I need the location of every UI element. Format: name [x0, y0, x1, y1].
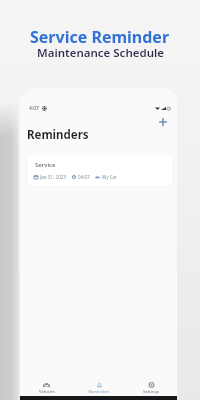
staticText: Reminders: [88, 389, 110, 395]
staticText: Settings: [143, 389, 159, 395]
staticText: My Car: [102, 174, 118, 180]
staticText: Service: [35, 161, 56, 169]
staticText: Jan 31, 2023: [40, 174, 67, 180]
button[interactable]: Vehicles: [20, 382, 73, 395]
button[interactable]: Reminders: [73, 382, 125, 395]
staticText: 04:07: [78, 174, 90, 180]
button[interactable]: Settings: [125, 382, 177, 395]
staticText: Service Reminder: [30, 26, 170, 48]
staticText: Vehicles: [39, 389, 55, 395]
staticText: Reminders: [27, 127, 89, 143]
staticText: 4:07: [29, 105, 39, 112]
staticText: Maintenance Schedule: [37, 45, 164, 61]
button[interactable]: Add reminder: [155, 114, 171, 130]
button[interactable]: Service: [27, 154, 173, 187]
